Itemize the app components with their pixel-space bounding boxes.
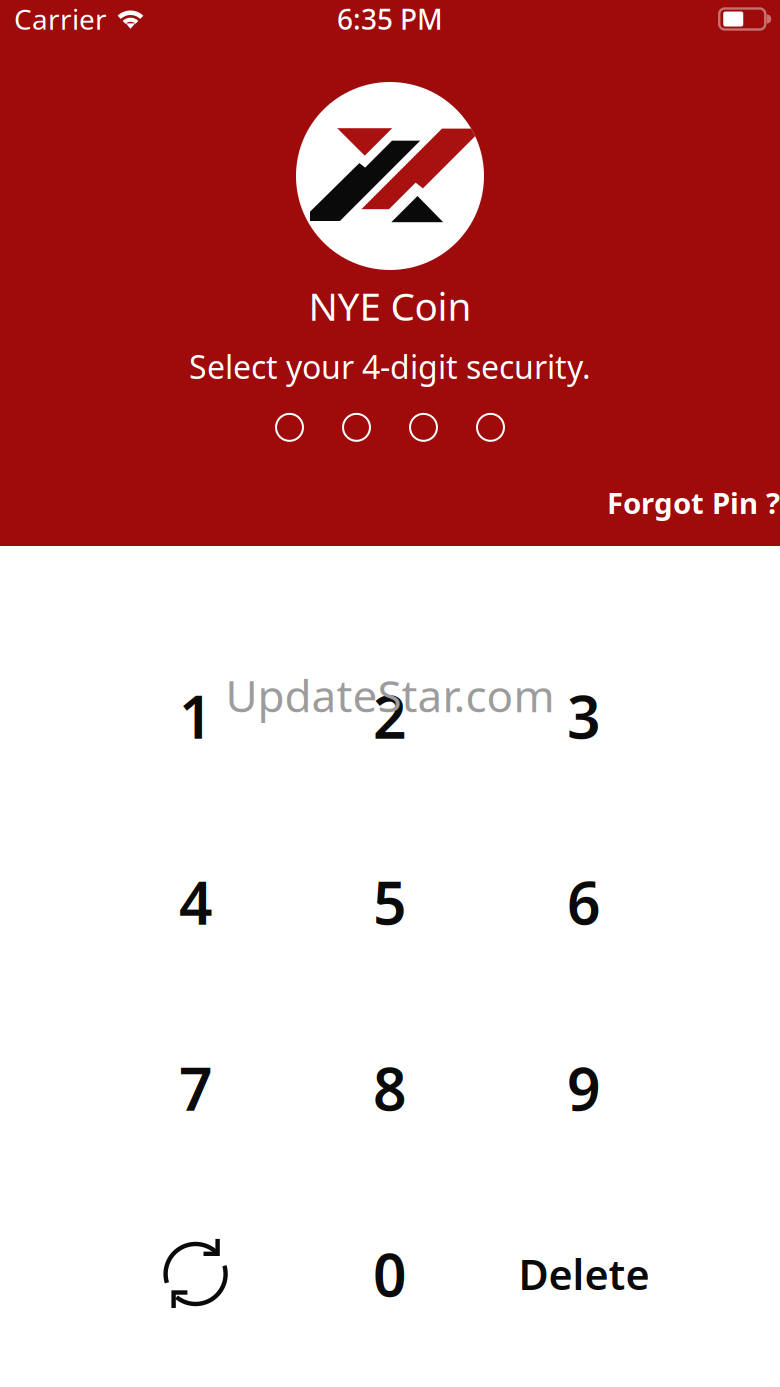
- button[interactable]: 1: [99, 623, 293, 809]
- button[interactable]: Delete: [487, 1181, 681, 1367]
- staticText: 4: [179, 863, 213, 941]
- button[interactable]: 4: [99, 809, 293, 995]
- button[interactable]: 3: [487, 623, 681, 809]
- staticText: UpdateStar.com: [225, 666, 554, 724]
- staticText: 1: [179, 677, 213, 755]
- staticText: 2: [373, 677, 407, 755]
- button[interactable]: 2: [293, 623, 487, 809]
- button[interactable]: 5: [293, 809, 487, 995]
- staticText: 7: [179, 1049, 213, 1127]
- staticText: Carrier: [14, 0, 107, 38]
- button[interactable]: 7: [99, 995, 293, 1181]
- button[interactable]: Reset: [99, 1181, 293, 1367]
- button[interactable]: 8: [293, 995, 487, 1181]
- button[interactable]: Forgot Pin ?: [607, 483, 780, 522]
- staticText: 3: [567, 677, 601, 755]
- button[interactable]: 9: [487, 995, 681, 1181]
- staticText: Delete: [518, 1247, 649, 1301]
- button[interactable]: 0: [293, 1181, 487, 1367]
- staticText: 8: [373, 1049, 407, 1127]
- staticText: 6: [567, 863, 601, 941]
- staticText: Select your 4-digit security.: [189, 345, 591, 388]
- staticText: 5: [373, 863, 407, 941]
- button[interactable]: 6: [487, 809, 681, 995]
- staticText: 0: [373, 1235, 407, 1313]
- staticText: 9: [567, 1049, 601, 1127]
- staticText: NYE Coin: [308, 280, 471, 331]
- staticText: 6:35 PM: [337, 0, 443, 38]
- staticText: Forgot Pin ?: [607, 483, 780, 522]
